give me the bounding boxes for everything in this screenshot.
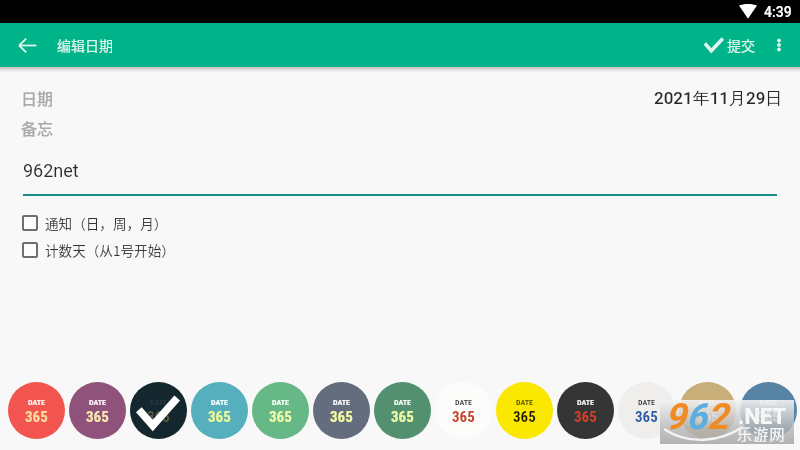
staticText: 365 <box>513 408 536 426</box>
staticText: 365 <box>86 408 109 426</box>
button[interactable]: 提交 <box>697 28 759 61</box>
staticText: DATE <box>89 398 107 407</box>
staticText: 365 <box>269 408 292 426</box>
button[interactable]: Choose DATE 365 icon <box>374 382 431 439</box>
staticText: 365 <box>757 408 780 426</box>
button[interactable]: Choose DATE 365 icon <box>435 382 492 439</box>
staticText: DATE <box>211 398 229 407</box>
staticText: .NET <box>738 404 787 430</box>
staticText: 提交 <box>727 35 755 55</box>
staticText: DATE <box>333 398 351 407</box>
button[interactable]: Choose DATE 365 icon <box>557 382 614 439</box>
staticText: 编辑日期 <box>57 35 113 55</box>
staticText: DATE <box>577 398 595 407</box>
staticText: DATE <box>516 398 534 407</box>
staticText: 2 <box>707 396 728 438</box>
staticText: DATE <box>455 398 473 407</box>
staticText: 365 <box>391 408 414 426</box>
staticText: 2021年11月29日 <box>654 88 783 109</box>
staticText: 365 <box>147 408 170 426</box>
staticText: 365 <box>25 408 48 426</box>
staticText: DATE <box>28 398 46 407</box>
button[interactable]: Choose DATE 365 icon <box>69 382 126 439</box>
staticText: 6 <box>686 396 707 438</box>
button[interactable]: Choose DATE 365 icon <box>618 382 675 439</box>
button[interactable]: Choose DATE 365 icon <box>130 382 187 439</box>
staticText: DATE <box>638 398 656 407</box>
staticText: 365 <box>452 408 475 426</box>
staticText: DATE <box>699 398 717 407</box>
staticText: 4:39 <box>764 4 792 20</box>
button[interactable]: Choose DATE 365 icon <box>740 382 797 439</box>
button[interactable]: 通知（日，周，月） <box>0 209 800 236</box>
button[interactable]: Back <box>7 25 47 65</box>
staticText: 365 <box>208 408 231 426</box>
button[interactable]: Choose DATE 365 icon <box>679 382 736 439</box>
staticText: 计数天（从1号开始） <box>45 240 175 260</box>
staticText: 备忘 <box>21 116 54 139</box>
staticText: 365 <box>330 408 353 426</box>
button[interactable]: Choose DATE 365 icon <box>8 382 65 439</box>
staticText: 365 <box>574 408 597 426</box>
staticText: DATE <box>272 398 290 407</box>
staticText: 日期 <box>21 86 54 109</box>
staticText: DATE <box>394 398 412 407</box>
button[interactable]: Choose DATE 365 icon <box>496 382 553 439</box>
staticText: 乐游网 <box>737 423 786 445</box>
staticText: 通知（日，周，月） <box>45 213 168 233</box>
button[interactable]: Choose DATE 365 icon <box>313 382 370 439</box>
staticText: 365 <box>635 408 658 426</box>
button[interactable]: Choose DATE 365 icon <box>191 382 248 439</box>
button[interactable]: 计数天（从1号开始） <box>0 236 800 263</box>
staticText: DATE <box>760 398 778 407</box>
button[interactable]: More options <box>761 27 797 63</box>
staticText: DATE <box>150 398 168 407</box>
button[interactable]: Choose DATE 365 icon <box>252 382 309 439</box>
staticText: 9 <box>665 396 686 438</box>
staticText: 962net <box>23 160 79 181</box>
staticText: 365 <box>696 408 719 426</box>
